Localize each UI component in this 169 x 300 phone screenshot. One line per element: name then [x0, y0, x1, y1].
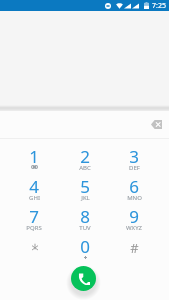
button[interactable]: 6	[109, 174, 159, 204]
button[interactable]: 1	[9, 144, 59, 174]
button[interactable]: 5	[60, 174, 110, 204]
button[interactable]: 7	[9, 204, 59, 234]
staticText: 9	[129, 205, 139, 228]
button[interactable]: 2	[60, 144, 110, 174]
button[interactable]: 8	[60, 204, 110, 234]
button[interactable]	[9, 234, 59, 264]
staticText: ABC	[79, 164, 91, 172]
button[interactable]: 9	[109, 204, 159, 234]
staticText: DEF	[129, 164, 140, 172]
staticText: PQRS	[26, 224, 42, 232]
staticText: MNO	[127, 194, 142, 202]
staticText: GHI	[29, 194, 40, 202]
staticText: 6	[129, 175, 139, 198]
staticText: 0	[80, 235, 90, 258]
button[interactable]: 0	[60, 234, 110, 264]
staticText: #	[130, 239, 139, 257]
staticText: 3	[129, 145, 139, 168]
staticText: 7:25	[152, 1, 166, 11]
staticText: 8	[80, 205, 90, 228]
staticText: JKL	[81, 194, 90, 202]
button[interactable]: Backspace	[146, 114, 167, 135]
staticText: WXYZ	[126, 224, 142, 232]
staticText: 4	[29, 175, 39, 198]
staticText: 7	[29, 205, 39, 228]
staticText: TUV	[79, 224, 91, 232]
button[interactable]: #	[109, 234, 159, 264]
button[interactable]: 4	[9, 174, 59, 204]
staticText: 2	[80, 145, 90, 168]
button[interactable]: 3	[109, 144, 159, 174]
staticText: 5	[80, 175, 90, 198]
button[interactable]: Call	[71, 266, 96, 291]
staticText: 1	[29, 145, 39, 168]
